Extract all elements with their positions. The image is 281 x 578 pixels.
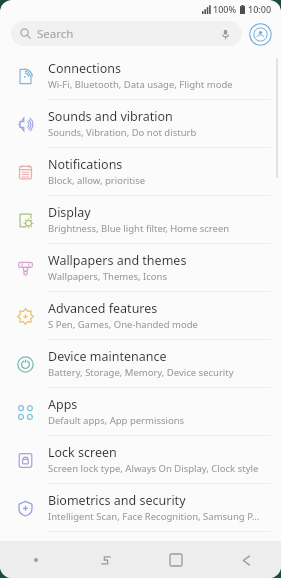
staticText: Battery, Storage, Memory, Device securit… bbox=[48, 366, 234, 379]
button[interactable]: Voice search bbox=[217, 26, 233, 42]
button[interactable]: Back bbox=[234, 548, 258, 572]
button[interactable]: Search bbox=[11, 21, 242, 46]
staticText: Lock screen bbox=[48, 444, 117, 461]
button[interactable]: Recent apps bbox=[94, 548, 118, 572]
button[interactable]: Device maintenance bbox=[0, 340, 281, 388]
button[interactable]: Advanced features bbox=[0, 292, 281, 340]
button[interactable]: Home bbox=[164, 548, 188, 572]
staticText: Block, allow, prioritise bbox=[48, 174, 146, 187]
staticText: 100% bbox=[213, 3, 237, 15]
button[interactable]: Lock screen bbox=[0, 436, 281, 484]
button[interactable]: Samsung account bbox=[248, 22, 272, 46]
staticText: Device maintenance bbox=[48, 348, 167, 365]
staticText: Brightness, Blue light filter, Home scre… bbox=[48, 222, 230, 235]
button[interactable]: Apps bbox=[0, 388, 281, 436]
button[interactable]: Menu bbox=[26, 550, 46, 570]
button[interactable]: Sounds and vibration bbox=[0, 100, 281, 148]
button[interactable]: Display bbox=[0, 196, 281, 244]
staticText: Sounds and vibration bbox=[48, 108, 173, 125]
staticText: 10:00 bbox=[248, 3, 272, 15]
button[interactable]: Biometrics and security bbox=[0, 484, 281, 532]
staticText: Connections bbox=[48, 60, 121, 77]
button[interactable]: Notifications bbox=[0, 148, 281, 196]
staticText: Screen lock type, Always On Display, Clo… bbox=[48, 462, 259, 475]
staticText: Search bbox=[37, 26, 74, 42]
staticText: S Pen, Games, One-handed mode bbox=[48, 318, 198, 331]
button[interactable]: Connections bbox=[0, 52, 281, 100]
button[interactable]: Wallpapers and themes bbox=[0, 244, 281, 292]
staticText: Biometrics and security bbox=[48, 492, 186, 509]
staticText: Wi-Fi, Bluetooth, Data usage, Flight mod… bbox=[48, 78, 233, 91]
staticText: Intelligent Scan, Face Recognition, Sams… bbox=[48, 510, 260, 523]
staticText: Wallpapers and themes bbox=[48, 252, 187, 269]
staticText: Default apps, App permissions bbox=[48, 414, 185, 427]
staticText: Notifications bbox=[48, 156, 123, 173]
staticText: Apps bbox=[48, 396, 78, 413]
staticText: Wallpapers, Themes, Icons bbox=[48, 270, 168, 283]
staticText: Display bbox=[48, 204, 91, 221]
staticText: Sounds, Vibration, Do not disturb bbox=[48, 126, 197, 139]
staticText: Advanced features bbox=[48, 300, 158, 317]
